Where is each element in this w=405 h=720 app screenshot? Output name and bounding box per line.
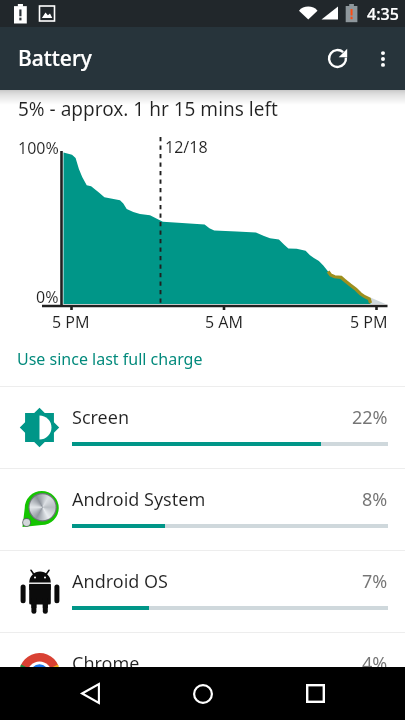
staticText: 100% bbox=[18, 137, 59, 159]
staticText: 4% bbox=[362, 651, 388, 676]
staticText: 22% bbox=[352, 405, 388, 430]
staticText: 5% - approx. 1 hr 15 mins left bbox=[18, 96, 278, 122]
button[interactable]: Android System bbox=[0, 469, 405, 550]
staticText: Use since last full charge bbox=[17, 348, 203, 370]
staticText: Screen bbox=[72, 405, 130, 430]
button[interactable]: Android OS bbox=[0, 551, 405, 632]
staticText: 5 AM bbox=[205, 311, 244, 333]
staticText: 8% bbox=[362, 487, 388, 512]
button[interactable]: Home bbox=[171, 667, 235, 720]
staticText: 4:35 bbox=[367, 3, 399, 25]
staticText: 5 PM bbox=[350, 311, 388, 333]
button[interactable]: Back bbox=[58, 667, 122, 720]
staticText: Chrome bbox=[72, 651, 140, 676]
button[interactable]: Chrome bbox=[0, 633, 405, 714]
staticText: 5 PM bbox=[52, 311, 90, 333]
staticText: 0% bbox=[36, 286, 59, 308]
staticText: Battery bbox=[18, 44, 92, 73]
staticText: 7% bbox=[362, 569, 388, 594]
staticText: Android System bbox=[72, 487, 206, 512]
button[interactable]: Recent apps bbox=[283, 667, 347, 720]
button[interactable]: Refresh bbox=[311, 27, 363, 90]
staticText: Android OS bbox=[72, 569, 168, 594]
staticText: 12/18 bbox=[165, 136, 208, 158]
button[interactable]: More options bbox=[363, 27, 403, 90]
button[interactable]: Screen bbox=[0, 387, 405, 468]
